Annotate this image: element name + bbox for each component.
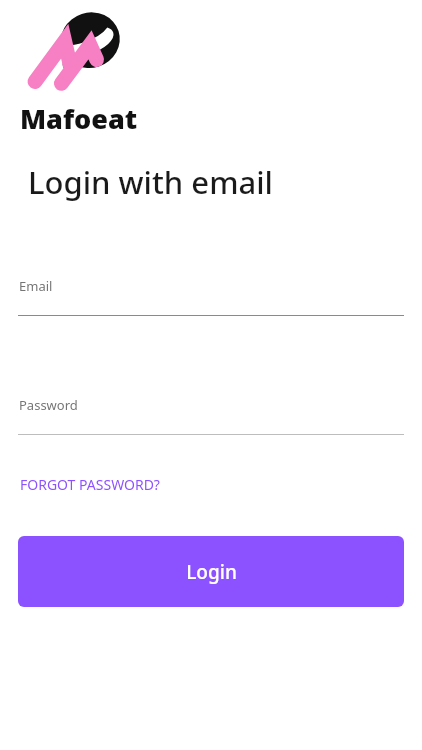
- button[interactable]: Email: [0, 277, 422, 316]
- staticText: FORGOT PASSWORD?: [20, 475, 160, 494]
- button[interactable]: Login: [18, 536, 404, 607]
- button[interactable]: Password: [0, 396, 422, 435]
- staticText: Email: [19, 277, 53, 295]
- button[interactable]: FORGOT PASSWORD?: [18, 471, 162, 498]
- staticText: Login: [186, 559, 237, 585]
- staticText: Login with email: [28, 161, 273, 203]
- staticText: Mafoeat: [20, 100, 138, 137]
- staticText: Password: [19, 396, 78, 414]
